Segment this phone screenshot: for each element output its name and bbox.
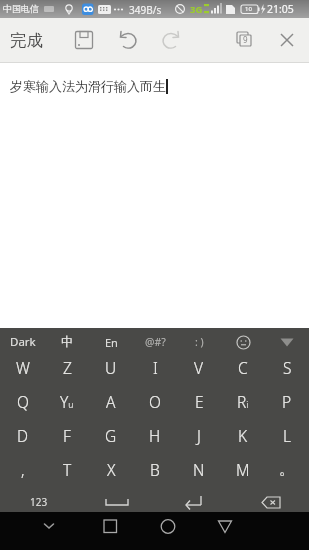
staticText: 中国电信 <box>3 3 39 14</box>
button[interactable]: V <box>177 350 221 384</box>
button[interactable]: X <box>89 452 133 486</box>
button[interactable]: H <box>133 418 177 452</box>
staticText: L <box>283 425 291 446</box>
button[interactable]: C <box>221 350 265 384</box>
button[interactable]: J <box>177 418 221 452</box>
staticText: S <box>283 357 292 378</box>
button[interactable] <box>36 514 62 538</box>
staticText: X <box>107 459 116 480</box>
button[interactable]: En <box>89 328 133 350</box>
button[interactable]: G <box>89 418 133 452</box>
staticText: 。 <box>279 459 295 479</box>
button[interactable]: 123 <box>0 486 78 512</box>
button[interactable] <box>269 22 305 58</box>
button[interactable]: I <box>133 350 177 384</box>
staticText: : ) <box>195 335 204 349</box>
staticText: G <box>105 425 117 446</box>
button[interactable]: K <box>221 418 265 452</box>
button[interactable] <box>110 22 146 58</box>
button[interactable]: A <box>89 384 133 418</box>
button[interactable]: S <box>265 350 309 384</box>
staticText: T <box>63 459 72 480</box>
button[interactable]: @#? <box>133 328 177 350</box>
staticText: 123 <box>30 495 48 509</box>
staticText: H <box>149 425 161 446</box>
staticText: O <box>149 391 161 412</box>
button[interactable]: P <box>265 384 309 418</box>
staticText: K <box>238 425 248 446</box>
button[interactable]: O <box>133 384 177 418</box>
button[interactable] <box>265 328 309 350</box>
button[interactable]: L <box>265 418 309 452</box>
button[interactable]: 中 <box>45 328 89 350</box>
staticText: P <box>282 391 292 412</box>
button[interactable] <box>66 22 102 58</box>
staticText: E <box>195 391 204 412</box>
button[interactable]: 完成 <box>6 26 47 55</box>
button[interactable]: Q <box>0 384 45 418</box>
staticText: 岁寒输入法为滑行输入而生 <box>10 78 166 94</box>
staticText: U <box>105 357 117 378</box>
button[interactable]: : ) <box>177 328 221 350</box>
staticText: J <box>197 425 201 446</box>
button[interactable] <box>221 328 265 350</box>
button[interactable]: 。 <box>265 452 309 486</box>
staticText: D <box>17 425 29 446</box>
staticText: W <box>16 357 30 378</box>
staticText: @#? <box>145 335 166 349</box>
staticText: Q <box>17 391 29 412</box>
staticText: , <box>21 459 25 480</box>
staticText: En <box>105 335 118 350</box>
button[interactable]: T <box>45 452 89 486</box>
staticText: B <box>150 459 160 480</box>
staticText: 21:05 <box>267 2 294 16</box>
staticText: Yu <box>60 391 74 412</box>
staticText: 349B/s <box>129 3 162 17</box>
staticText: Z <box>63 357 72 378</box>
staticText: 中 <box>61 334 74 350</box>
button[interactable]: E <box>177 384 221 418</box>
button[interactable] <box>154 513 182 541</box>
button[interactable] <box>211 513 239 541</box>
staticText: V <box>194 357 204 378</box>
button[interactable] <box>155 486 232 512</box>
button[interactable]: Dark <box>0 328 45 350</box>
staticText: F <box>63 425 71 446</box>
button[interactable] <box>232 486 309 512</box>
staticText: N <box>193 459 205 480</box>
staticText: C <box>238 357 248 378</box>
staticText: 3G <box>190 3 203 16</box>
button[interactable] <box>227 22 263 58</box>
button[interactable]: D <box>0 418 45 452</box>
staticText: Dark <box>10 334 36 350</box>
button[interactable] <box>153 22 189 58</box>
button[interactable] <box>96 513 124 541</box>
button[interactable]: W <box>0 350 45 384</box>
button[interactable]: , <box>0 452 45 486</box>
staticText: 完成 <box>10 30 43 51</box>
staticText: Ri <box>237 391 249 412</box>
button[interactable]: Yu <box>45 384 89 418</box>
staticText: M <box>236 459 250 480</box>
staticText: 10 <box>245 5 252 13</box>
button[interactable]: U <box>89 350 133 384</box>
staticText: I <box>153 357 158 378</box>
button[interactable]: M <box>221 452 265 486</box>
button[interactable]: Z <box>45 350 89 384</box>
button[interactable]: F <box>45 418 89 452</box>
button[interactable]: Ri <box>221 384 265 418</box>
staticText: A <box>106 391 116 412</box>
button[interactable]: B <box>133 452 177 486</box>
staticText: 9 <box>243 34 248 45</box>
button[interactable] <box>78 486 155 512</box>
button[interactable]: N <box>177 452 221 486</box>
